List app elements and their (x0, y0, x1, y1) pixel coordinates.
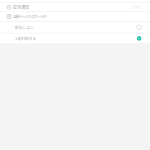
staticText: 上書き保存する (14, 36, 35, 41)
button[interactable]: 自動ページスクロール中 (0, 12, 150, 21)
staticText: 自動ページスクロール中 (13, 14, 46, 19)
button[interactable]: 上書き保存する (0, 33, 150, 43)
button[interactable]: 保存しない (0, 22, 150, 33)
staticText: 安全通知 (13, 4, 29, 10)
staticText: 保存しない (14, 25, 34, 30)
staticText: すべて (132, 5, 141, 9)
button[interactable]: 安全通知 (0, 3, 150, 11)
